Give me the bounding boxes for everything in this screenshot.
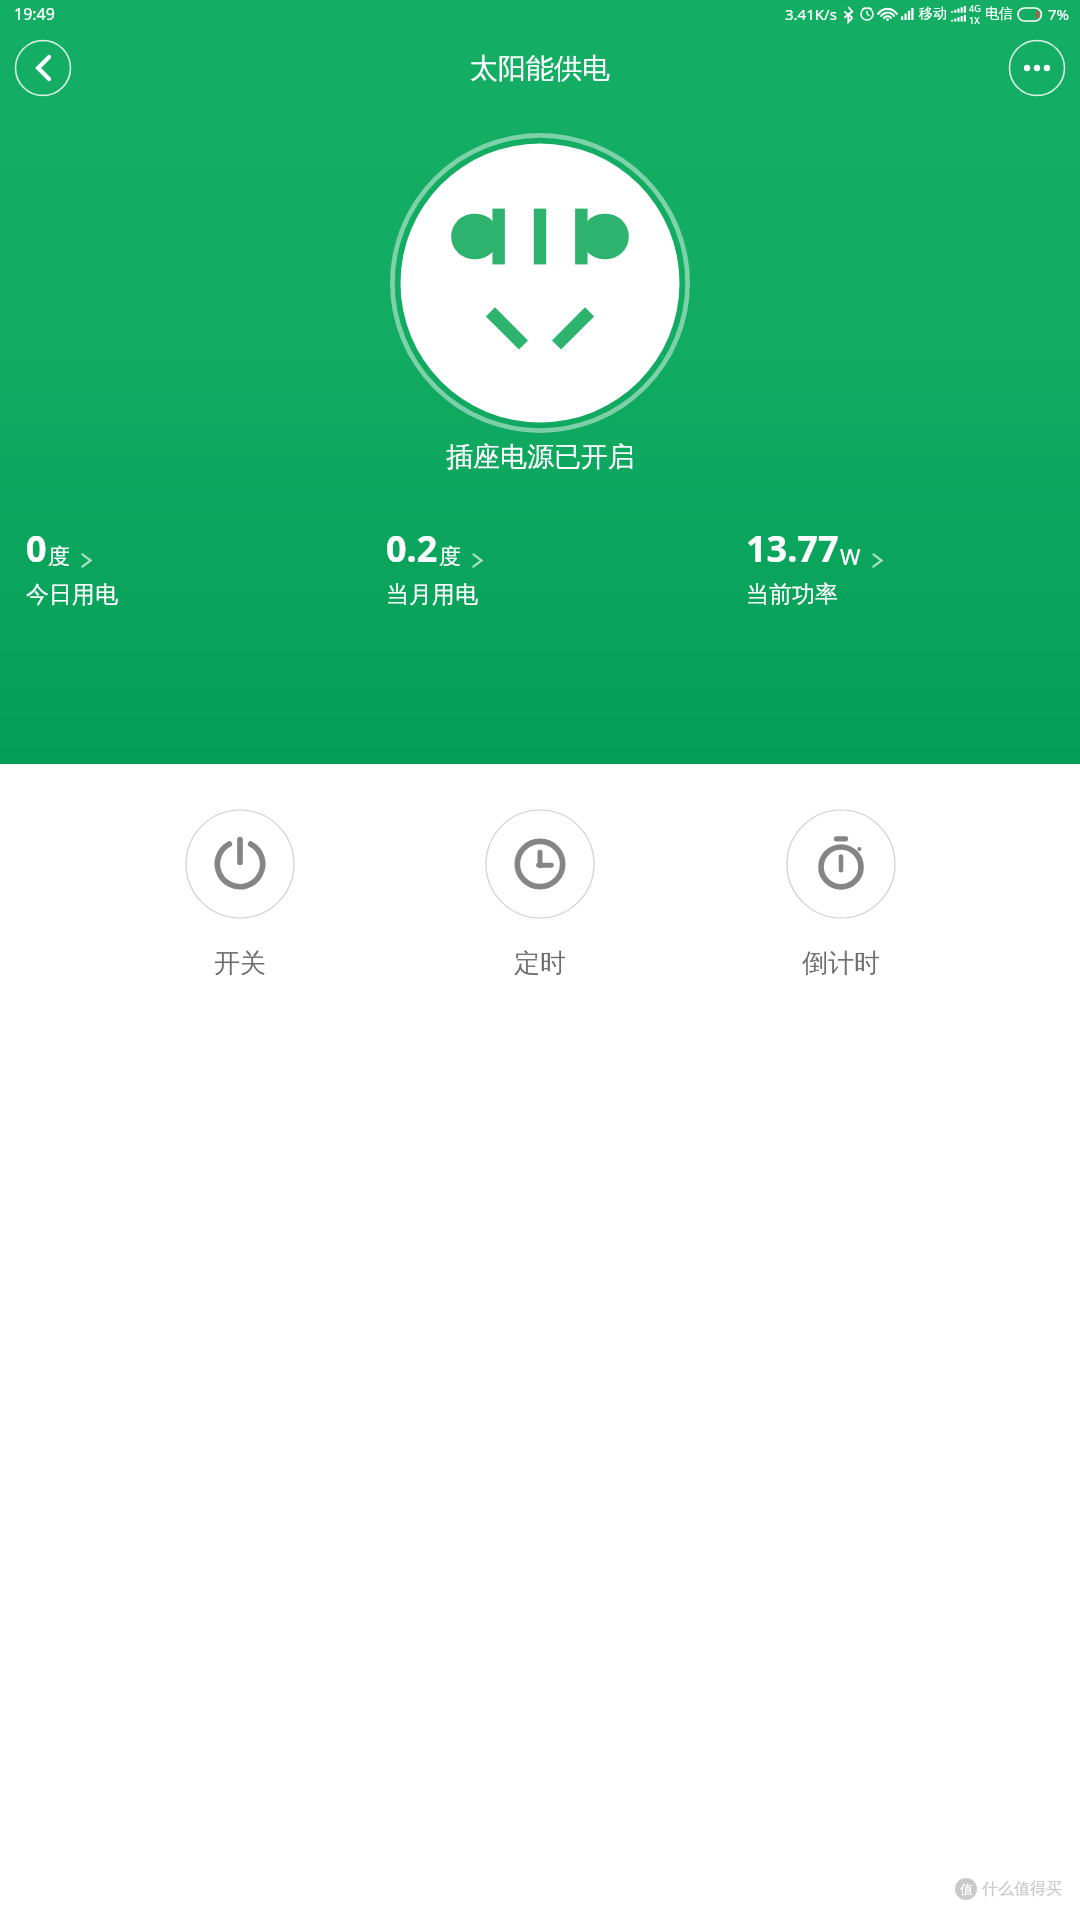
staticText: 什么值得买 [982,1879,1062,1899]
button[interactable]: 13.77 [720,520,1080,613]
button[interactable]: More options [1008,39,1066,97]
staticText: 移动 [919,5,947,23]
staticText: 19:49 [14,3,55,25]
staticText: 度 [439,543,461,571]
staticText: 倒计时 [802,947,880,980]
staticText: 今日用电 [26,580,118,609]
staticText: 13.77 [746,524,839,573]
staticText: 度 [48,543,70,571]
staticText: 当月用电 [386,580,478,609]
staticText: 7% [1048,4,1070,24]
staticText: 电信 [985,5,1013,23]
staticText: 插座电源已开启 [446,440,635,474]
button[interactable]: Countdown [780,809,902,980]
button[interactable]: 0.2 [360,520,720,613]
staticText: 0 [26,524,47,573]
staticText: 1X [969,14,980,26]
staticText: 定时 [514,947,566,980]
button[interactable]: 0 [0,520,360,613]
staticText: 3.41K/s [785,4,837,24]
staticText: 4G [969,2,981,14]
staticText: 当前功率 [746,580,838,609]
staticText: 开关 [214,947,266,980]
staticText: W [840,541,861,571]
staticText: 太阳能供电 [470,51,610,86]
staticText: 值 [960,1881,973,1897]
button[interactable]: Schedule timer [479,809,601,980]
button[interactable]: Back [14,39,72,97]
staticText: 0.2 [386,524,438,573]
button[interactable]: Socket power state [390,133,690,433]
button[interactable]: Power toggle [179,809,301,980]
